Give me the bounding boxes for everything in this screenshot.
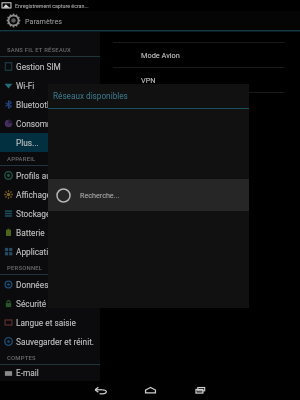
- staticText: APPAREIL: [7, 156, 36, 163]
- staticText: Plus...: [16, 138, 39, 148]
- button[interactable]: Consommation: [0, 114, 100, 133]
- button[interactable]: Affichage: [0, 185, 100, 204]
- staticText: Stockage: [16, 209, 51, 219]
- staticText: Réseaux disponibles: [53, 91, 128, 101]
- button[interactable]: Recent apps: [175, 381, 225, 400]
- button[interactable]: Sauvegarder et réinit.: [0, 332, 100, 351]
- staticText: Applications: [16, 247, 62, 257]
- staticText: Mode Avion: [141, 51, 180, 60]
- button[interactable]: Back: [75, 381, 125, 400]
- button[interactable]: Stockage: [0, 204, 100, 223]
- button[interactable]: Plus...: [0, 133, 100, 152]
- button[interactable]: Home: [125, 381, 175, 400]
- button[interactable]: Applications: [0, 242, 100, 261]
- staticText: COMPTES: [7, 355, 36, 362]
- staticText: PERSONNEL: [7, 265, 43, 272]
- staticText: Données de localisation: [16, 280, 100, 290]
- button[interactable]: Langue et saisie: [0, 313, 100, 332]
- staticText: Bluetooth: [16, 100, 52, 110]
- staticText: Sauvegarder et réinit.: [16, 337, 95, 347]
- button[interactable]: Wi-Fi: [0, 76, 100, 95]
- staticText: VPN: [141, 76, 156, 85]
- button[interactable]: Données de localisation: [0, 275, 100, 294]
- button[interactable]: Recherche...: [48, 179, 249, 211]
- button[interactable]: E-mail: [0, 365, 100, 381]
- staticText: Enregistrement capture écran...: [15, 3, 89, 9]
- staticText: Batterie: [16, 228, 45, 238]
- button[interactable]: Gestion SIM: [0, 57, 100, 76]
- staticText: Recherche...: [80, 191, 120, 199]
- staticText: E-mail: [16, 368, 39, 378]
- button[interactable]: Mode Avion: [141, 43, 300, 67]
- staticText: Wi-Fi: [16, 81, 35, 91]
- staticText: Paramètres: [25, 17, 62, 25]
- button[interactable]: Batterie: [0, 223, 100, 242]
- button[interactable]: Bluetooth: [0, 95, 100, 114]
- staticText: Consommation: [16, 119, 73, 129]
- staticText: Profils audio: [16, 171, 63, 181]
- button[interactable]: Sécurité: [0, 294, 100, 313]
- button[interactable]: Profils audio: [0, 166, 100, 185]
- staticText: Langue et saisie: [16, 318, 76, 328]
- staticText: Sécurité: [16, 299, 47, 309]
- staticText: Affichage: [16, 190, 51, 200]
- button[interactable]: VPN: [141, 68, 300, 92]
- staticText: Gestion SIM: [16, 62, 61, 72]
- staticText: SANS FIL ET RÉSEAUX: [7, 47, 72, 54]
